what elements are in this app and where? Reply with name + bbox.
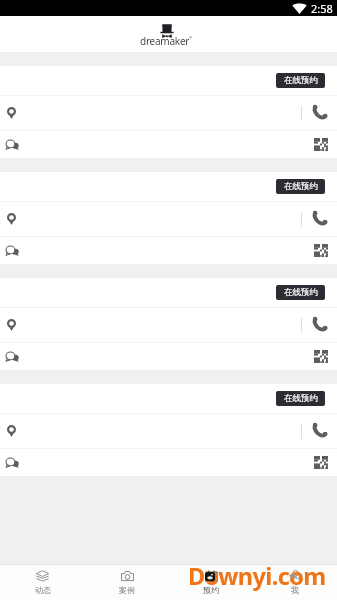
button[interactable]: 案例	[85, 565, 169, 600]
button[interactable]: QR code	[0, 343, 337, 370]
button[interactable]: Call	[0, 202, 337, 236]
button[interactable]: 在线预约	[276, 73, 325, 88]
staticText: dreamaker	[140, 34, 190, 48]
button[interactable]: 在线预约	[276, 391, 325, 406]
button[interactable]: QR code	[0, 131, 337, 158]
staticText: 在线预约	[284, 393, 318, 404]
button[interactable]: QR code	[0, 449, 337, 476]
button[interactable]: Call	[312, 422, 327, 437]
staticText: Downyi.com	[188, 560, 326, 592]
button[interactable]: Call	[0, 96, 337, 130]
button[interactable]: Call	[0, 414, 337, 448]
button[interactable]: Call	[312, 104, 327, 119]
button[interactable]: QR code	[314, 350, 328, 363]
button[interactable]: 动态	[0, 565, 85, 600]
staticText: 2:58	[311, 1, 333, 16]
button[interactable]: 预约	[169, 565, 253, 600]
staticText: 在线预约	[284, 75, 318, 86]
button[interactable]: 我	[253, 565, 337, 600]
button[interactable]: QR code	[314, 244, 328, 257]
staticText: 预约	[203, 585, 219, 595]
staticText: 在线预约	[284, 287, 318, 298]
button[interactable]: QR code	[314, 456, 328, 469]
button[interactable]: Call	[0, 308, 337, 342]
staticText: 在线预约	[284, 181, 318, 192]
staticText: 动态	[35, 585, 51, 595]
staticText: 我	[291, 585, 299, 595]
button[interactable]: 在线预约	[276, 179, 325, 194]
button[interactable]: QR code	[0, 237, 337, 264]
button[interactable]: 在线预约	[276, 285, 325, 300]
button[interactable]: QR code	[314, 138, 328, 151]
button[interactable]: Call	[312, 210, 327, 225]
button[interactable]: Call	[312, 316, 327, 331]
staticText: 案例	[119, 585, 135, 595]
staticText: ®	[189, 35, 193, 40]
